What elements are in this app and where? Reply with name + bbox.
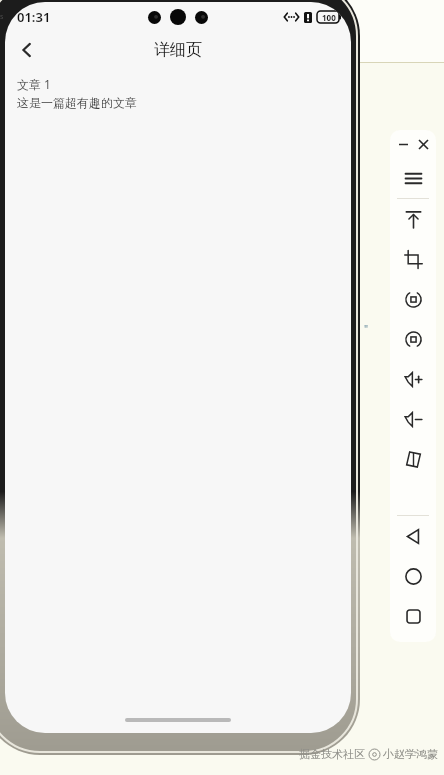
button[interactable]: Volume down xyxy=(390,399,436,439)
staticText: 01:31 xyxy=(17,8,51,26)
button[interactable]: Rotate left xyxy=(390,279,436,319)
button[interactable]: Minimize xyxy=(396,137,410,151)
button[interactable]: Back xyxy=(9,32,45,68)
button[interactable]: Menu xyxy=(390,158,436,198)
button[interactable]: Power xyxy=(390,199,436,239)
staticText: 100 xyxy=(322,12,336,23)
button[interactable]: Screenshot xyxy=(390,239,436,279)
staticText: s xyxy=(0,12,4,22)
button[interactable]: Recents xyxy=(390,596,436,636)
staticText: 小赵学鸿蒙 xyxy=(383,747,438,761)
staticText: 这是一篇超有趣的文章 xyxy=(17,95,137,110)
button[interactable]: Close xyxy=(416,137,430,151)
staticText: 详细页 xyxy=(154,40,202,60)
button[interactable]: Volume up xyxy=(390,359,436,399)
button[interactable]: Back xyxy=(390,516,436,556)
button[interactable]: Home xyxy=(390,556,436,596)
staticText: " xyxy=(364,322,369,336)
button[interactable]: Fold xyxy=(390,439,436,479)
staticText: 文章 1 xyxy=(17,76,51,92)
staticText: 掘金技术社区 xyxy=(299,747,365,761)
button[interactable]: Rotate right xyxy=(390,319,436,359)
